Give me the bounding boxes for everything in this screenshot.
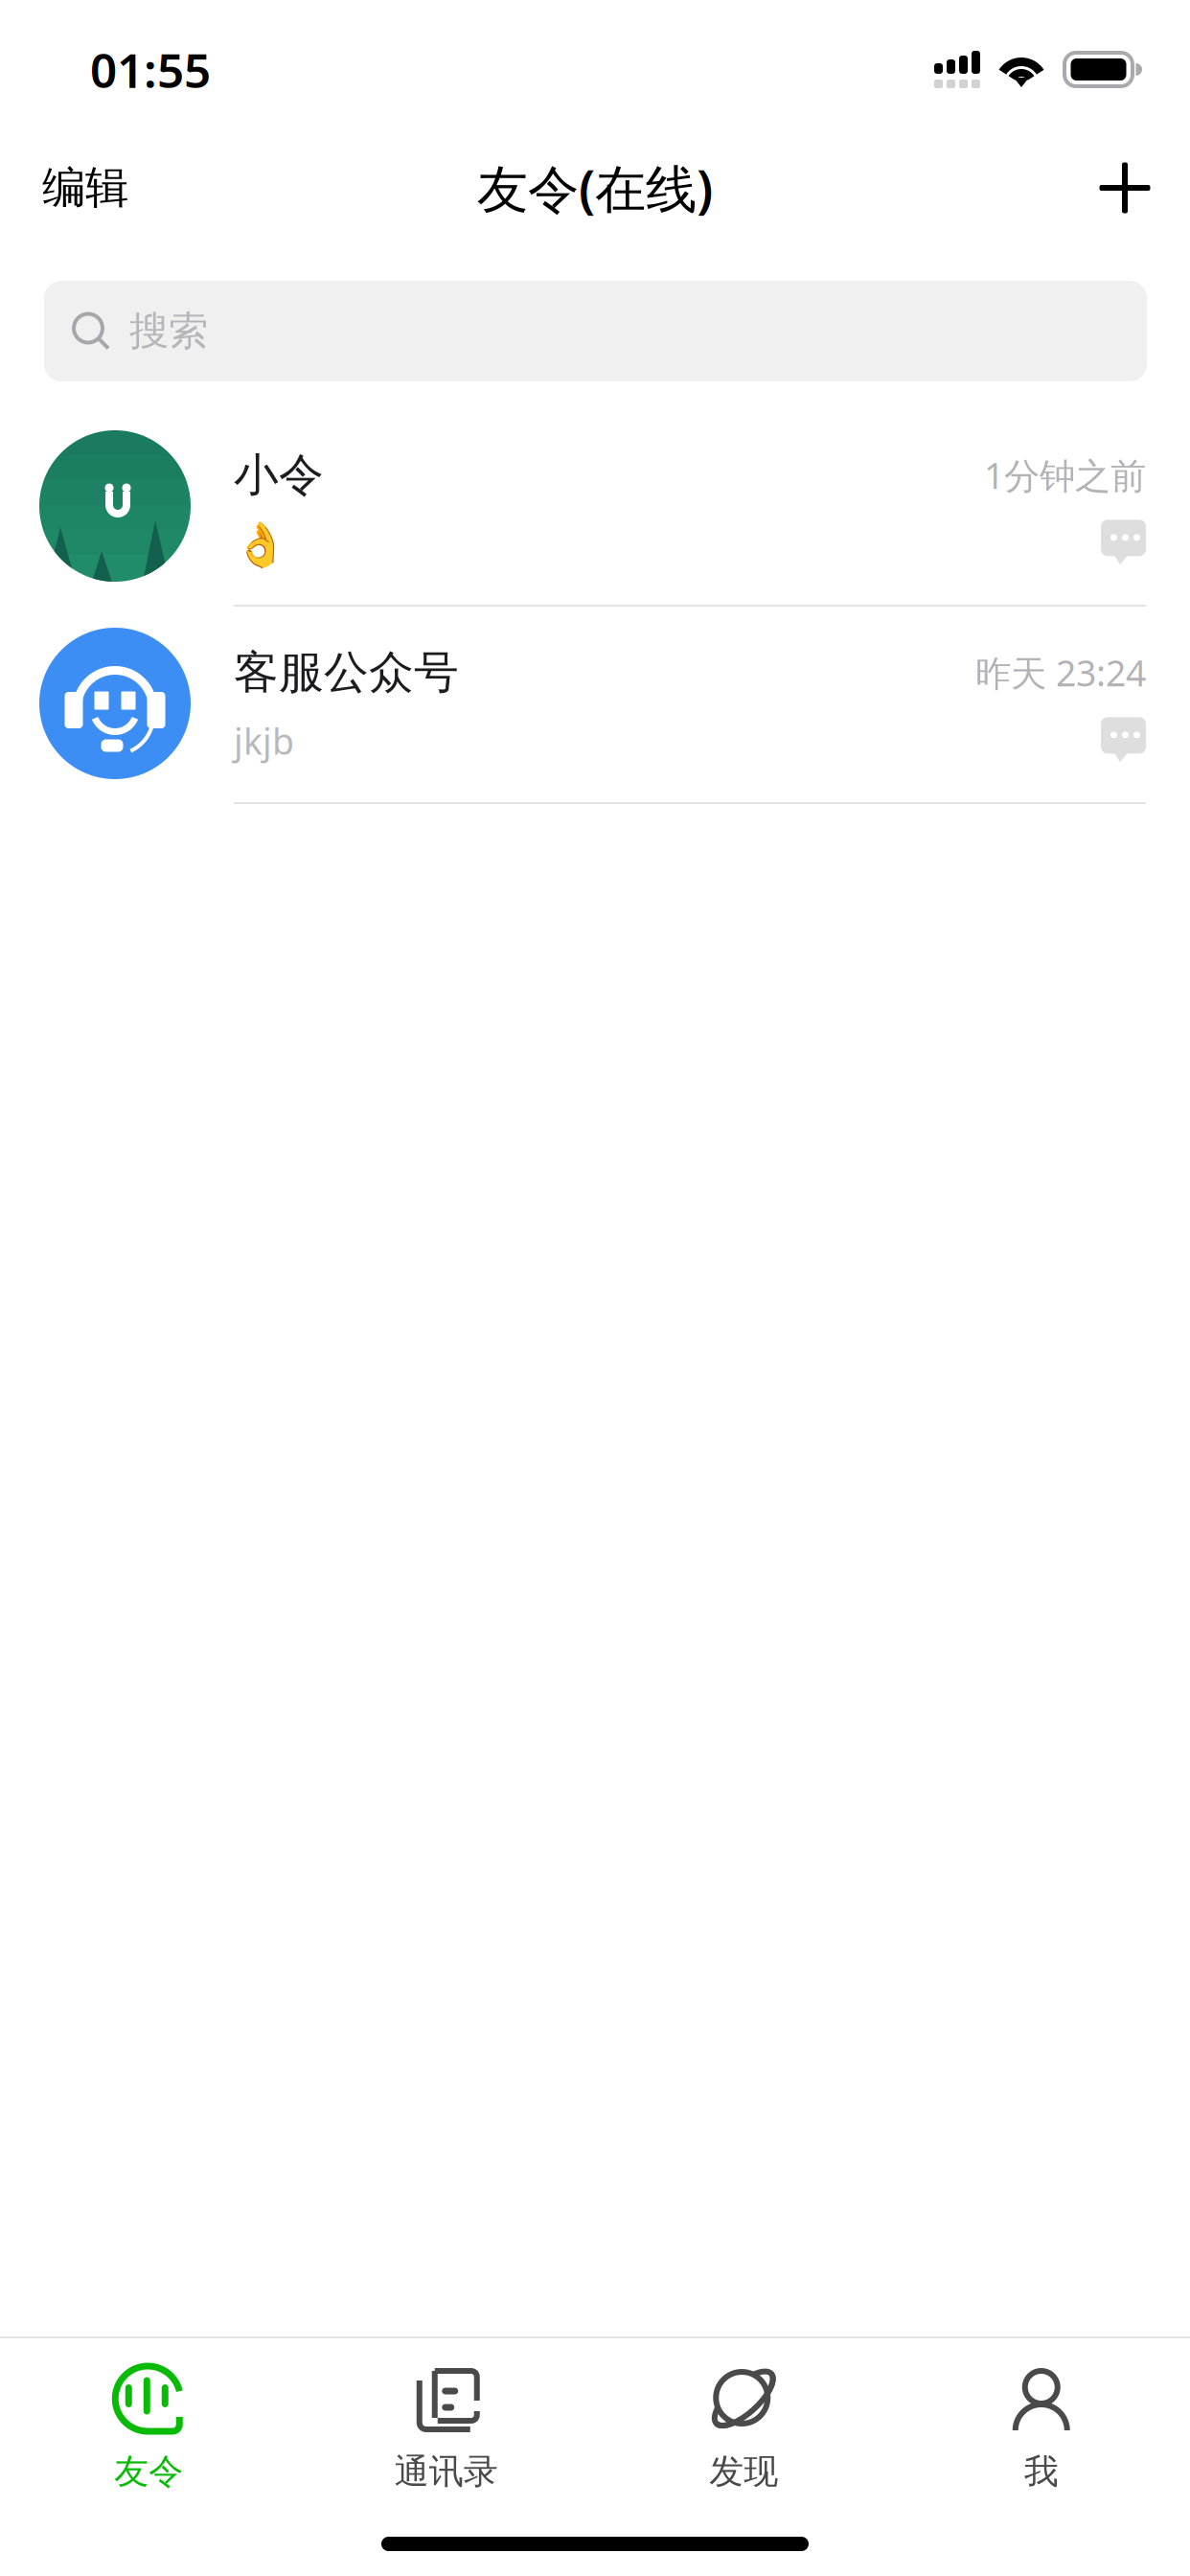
button[interactable]: 通讯录	[297, 2338, 595, 2520]
staticText: jkjb	[234, 717, 294, 765]
staticText: 1分钟之前	[984, 451, 1146, 499]
staticText: 小令	[234, 448, 324, 502]
staticText: 01:55	[90, 38, 211, 101]
staticText: 我	[1024, 2450, 1059, 2493]
button[interactable]: 发现	[595, 2338, 892, 2520]
button[interactable]: 小令	[0, 409, 1190, 607]
button[interactable]: 客服公众号	[0, 607, 1190, 804]
button[interactable]: 编辑	[21, 140, 149, 236]
button[interactable]: 搜索	[44, 281, 1147, 381]
staticText: 搜索	[129, 307, 208, 355]
staticText: 友令	[114, 2450, 183, 2493]
staticText: 👌	[234, 520, 287, 569]
button[interactable]: 友令	[0, 2338, 297, 2520]
staticText: 通讯录	[395, 2450, 498, 2493]
button[interactable]: 新建	[1074, 140, 1176, 236]
staticText: 友令(在线)	[477, 154, 713, 222]
staticText: 昨天 23:24	[975, 649, 1146, 696]
staticText: 发现	[709, 2450, 778, 2493]
button[interactable]: 我	[892, 2338, 1190, 2520]
staticText: 客服公众号	[234, 645, 459, 700]
staticText: 编辑	[42, 161, 128, 215]
